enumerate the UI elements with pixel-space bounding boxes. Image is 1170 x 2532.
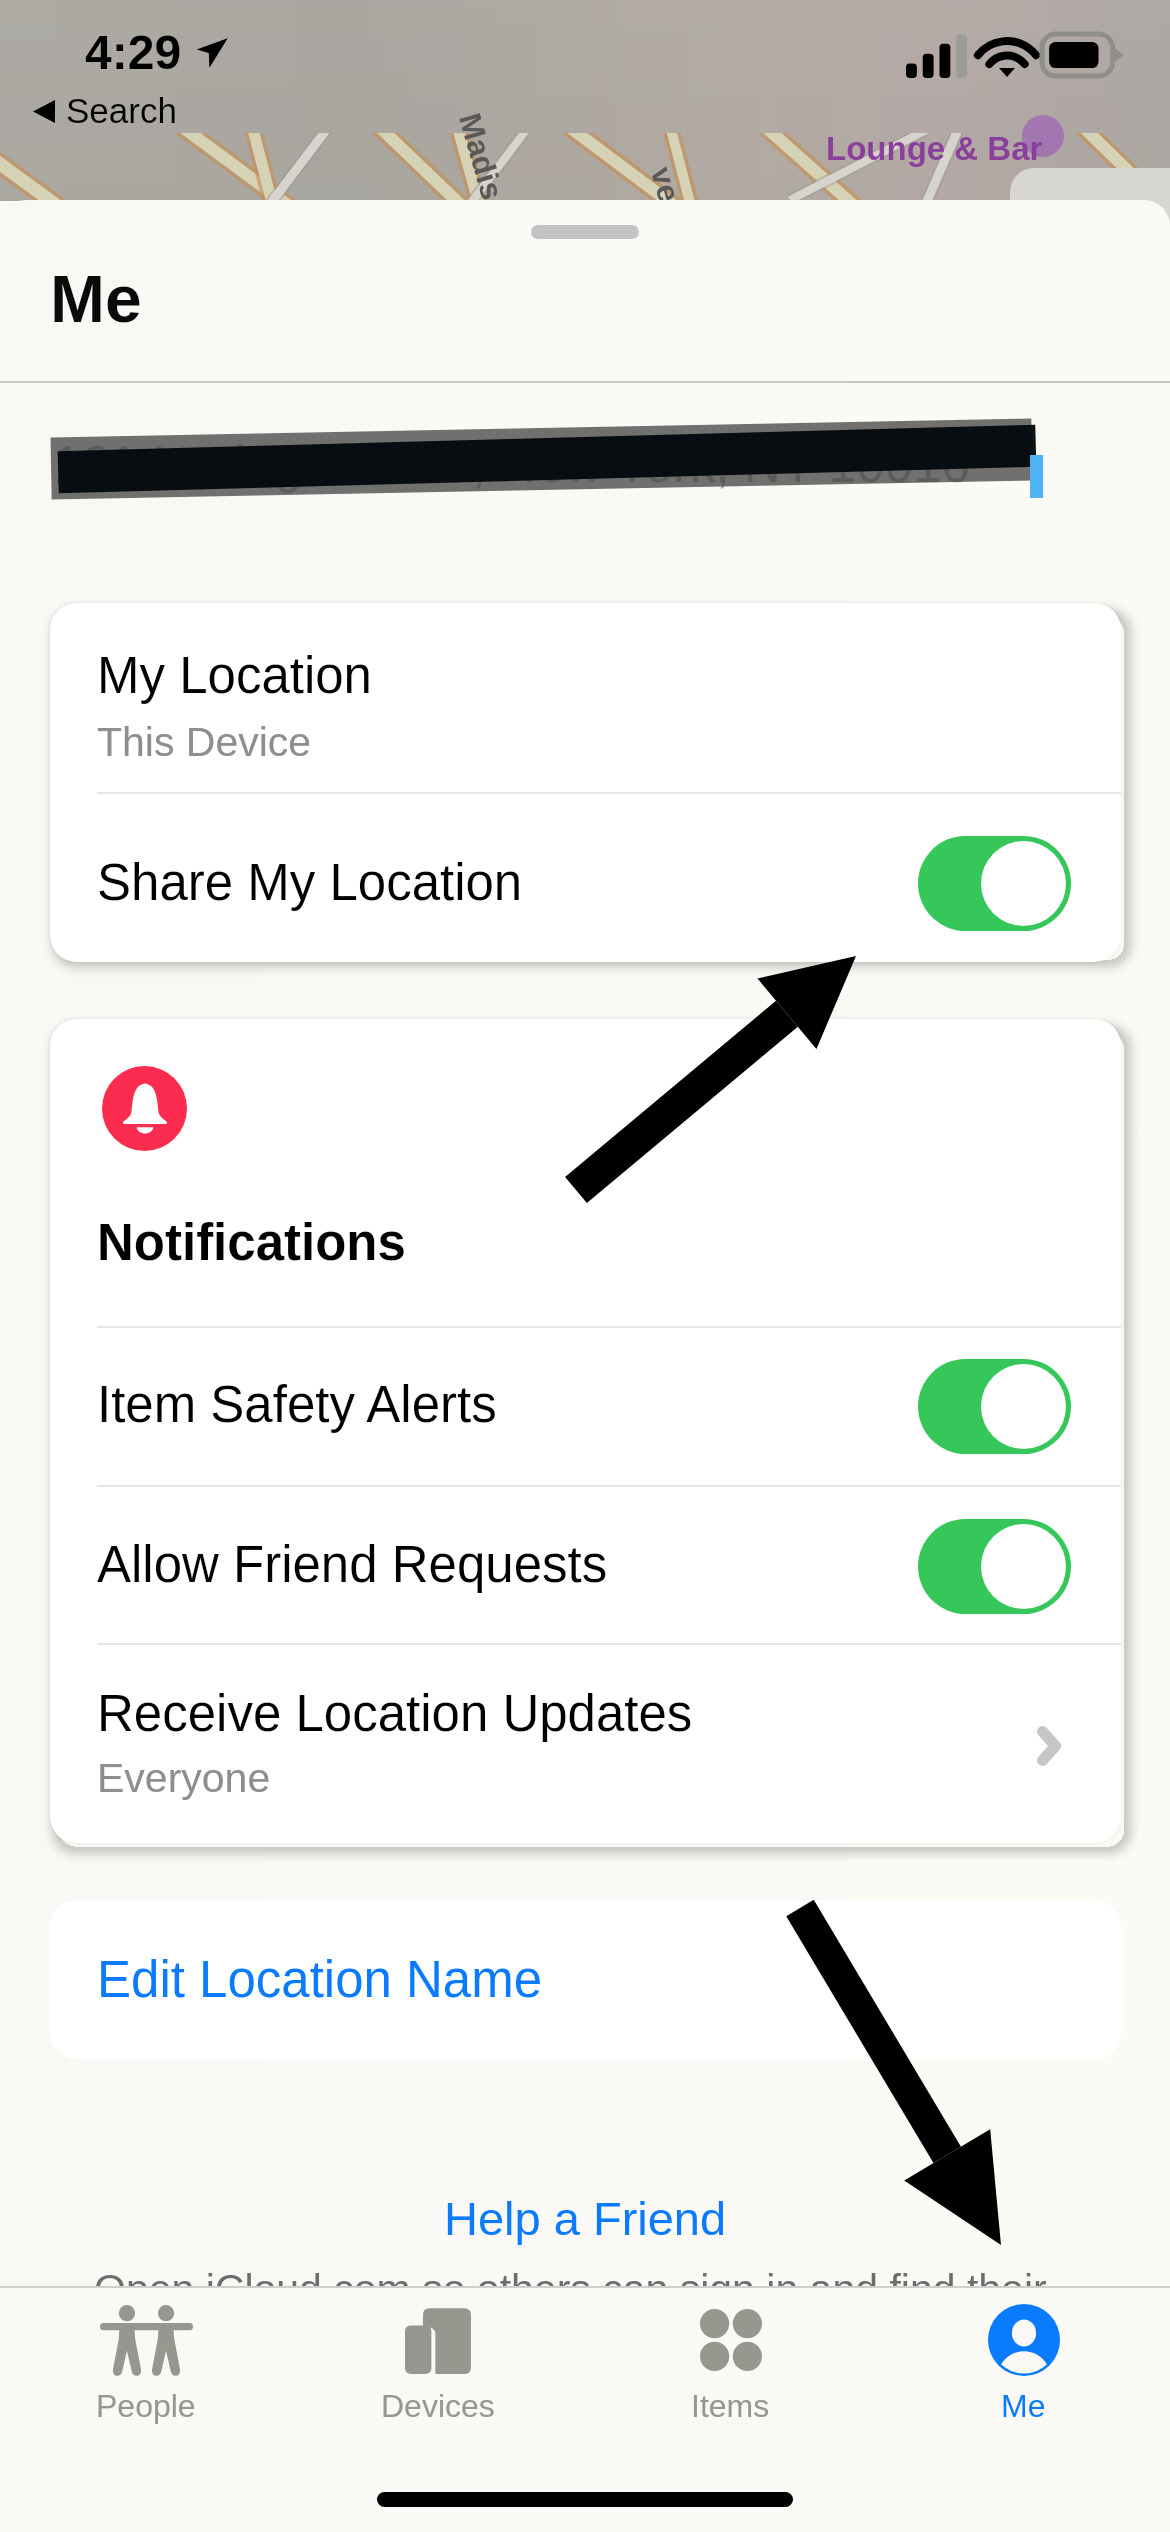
staticText: Items	[691, 2388, 770, 2424]
staticText: My Location	[97, 647, 372, 704]
button[interactable]: Me	[877, 2288, 1170, 2468]
button[interactable]: Help a Friend	[422, 2184, 749, 2253]
staticText: Help a Friend	[444, 2192, 727, 2245]
staticText: Allow Friend Requests	[97, 1536, 608, 1593]
staticText: Notifications	[97, 1214, 406, 1271]
staticText: ve	[644, 163, 687, 206]
button[interactable]: Share My Location	[50, 794, 1121, 962]
staticText: 4:29	[85, 26, 182, 80]
button[interactable]: People	[0, 2288, 292, 2468]
staticText: Me	[50, 262, 142, 336]
button[interactable]: Devices	[292, 2288, 584, 2468]
staticText: Open iCloud.com so others can sign in an…	[94, 2266, 1047, 2312]
button[interactable]: Toggle	[918, 836, 1071, 931]
button[interactable]: Item Safety Alerts	[50, 1328, 1121, 1485]
staticText: Madis	[452, 109, 510, 204]
button[interactable]: Items	[584, 2288, 877, 2468]
staticText: Everyone	[97, 1755, 271, 1801]
staticText: This Device	[97, 719, 312, 765]
staticText: Devices	[381, 2388, 495, 2424]
button[interactable]: Toggle	[918, 1519, 1071, 1614]
staticText: People	[96, 2388, 196, 2424]
staticText: Lounge & Bar	[826, 130, 1043, 167]
staticText: Share My Location	[97, 854, 523, 911]
button[interactable]: Edit Location Name	[50, 1900, 1121, 2059]
staticText: Edit Location Name	[97, 1951, 543, 2008]
button[interactable]: Allow Friend Requests	[50, 1487, 1121, 1645]
staticText: Me	[1001, 2388, 1046, 2424]
staticText: Item Safety Alerts	[97, 1376, 497, 1433]
button[interactable]: Toggle	[918, 1359, 1071, 1454]
button[interactable]: Receive Location Updates	[50, 1645, 1121, 1843]
button[interactable]: My Location	[50, 603, 1121, 962]
staticText: Search	[66, 91, 177, 130]
staticText: 161 Lexington Ave, New York, NY 10016	[53, 436, 970, 493]
staticText: Receive Location Updates	[97, 1685, 693, 1742]
